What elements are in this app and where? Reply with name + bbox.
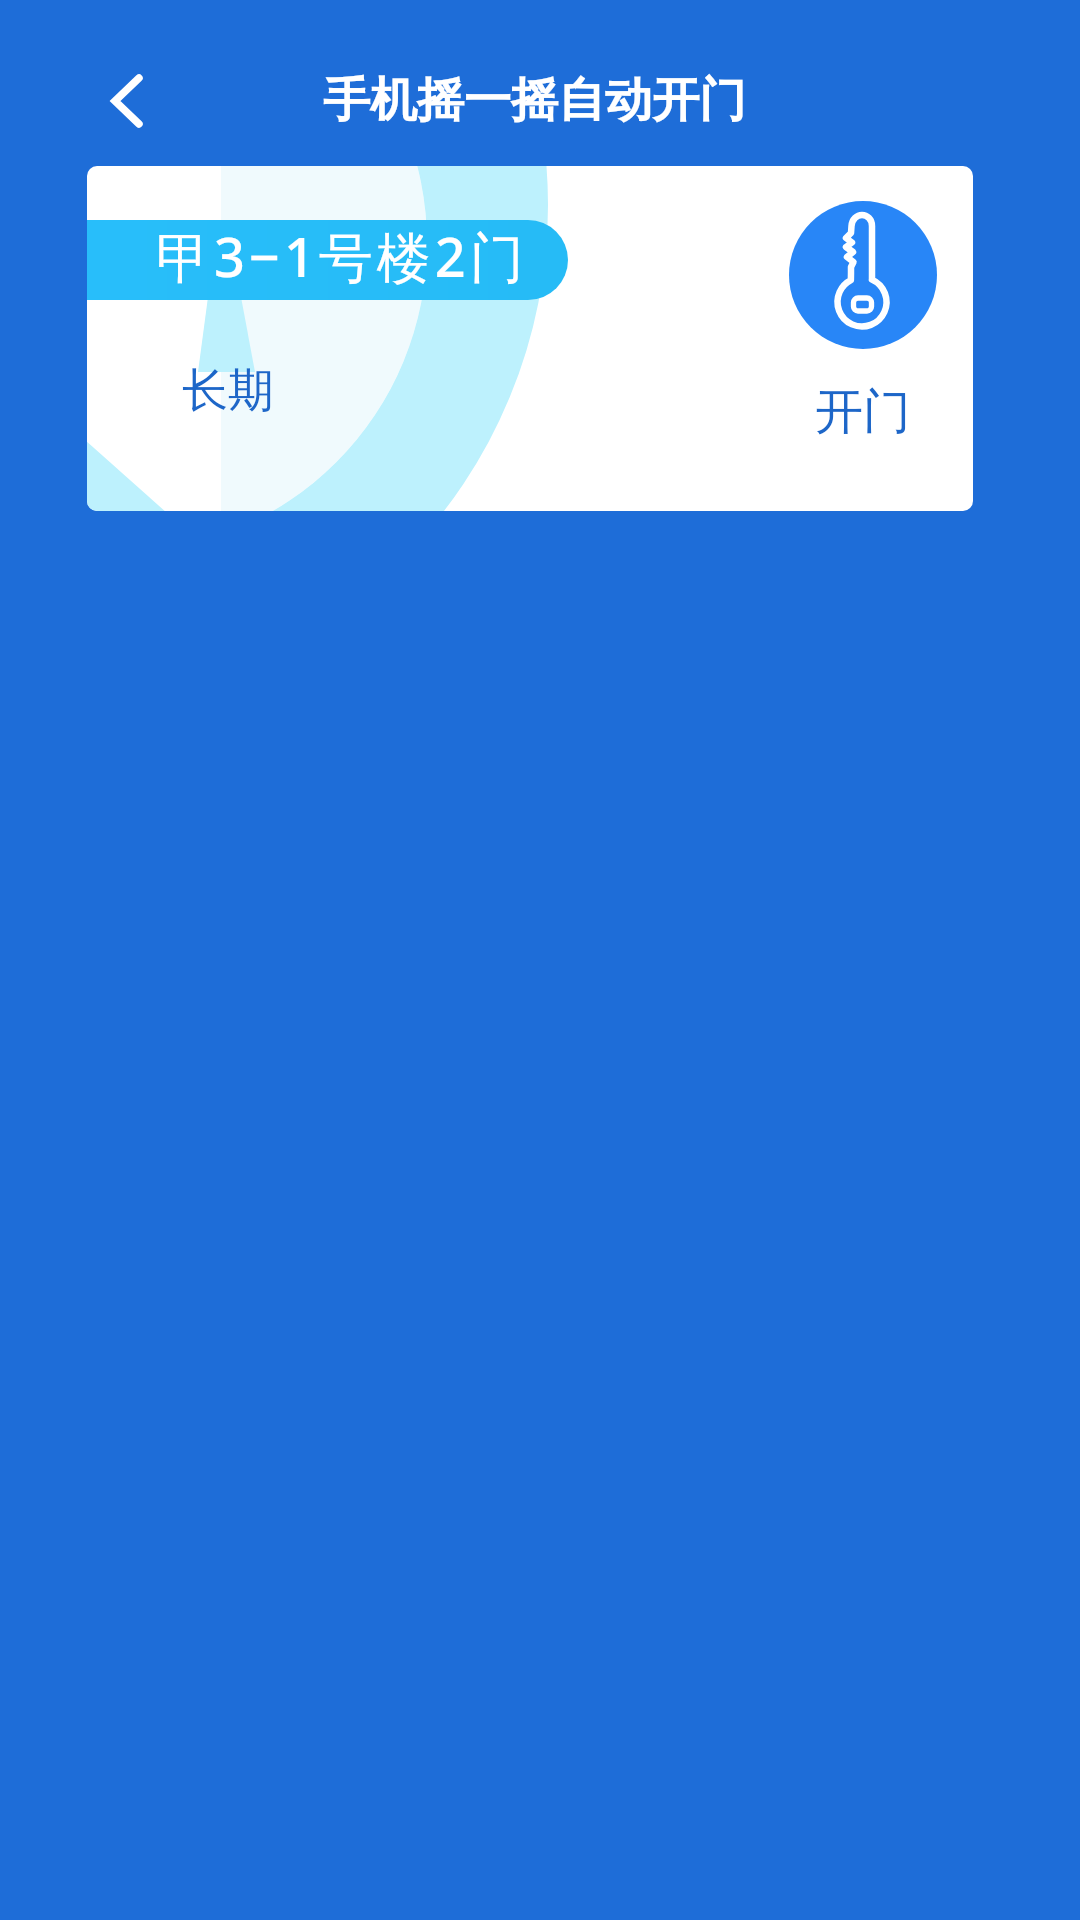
staticText: 甲3−1号楼2门 <box>156 220 528 293</box>
staticText: 开门 <box>815 382 911 442</box>
button[interactable]: Back <box>76 62 148 134</box>
staticText: 长期 <box>182 362 274 420</box>
button[interactable]: 甲3−1号楼2门 <box>87 166 973 511</box>
staticText: 手机摇一摇自动开门 <box>323 71 746 130</box>
button[interactable]: 开门 <box>789 201 937 442</box>
